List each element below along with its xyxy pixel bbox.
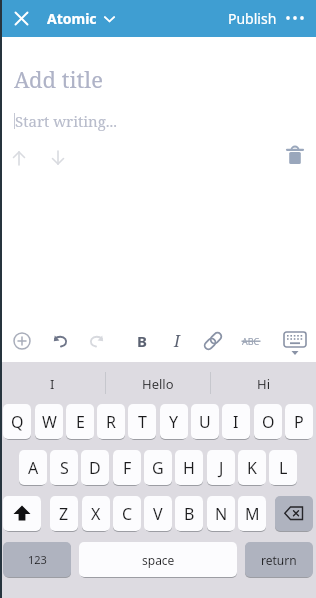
button[interactable]: L bbox=[269, 450, 297, 485]
staticText: I bbox=[174, 330, 180, 352]
button[interactable]: B bbox=[133, 330, 151, 352]
staticText: U bbox=[199, 411, 211, 433]
button[interactable]: G bbox=[144, 450, 172, 485]
button[interactable]: Hello bbox=[105, 365, 211, 403]
button[interactable] bbox=[202, 331, 224, 351]
button[interactable]: A bbox=[19, 450, 47, 485]
button[interactable]: space bbox=[79, 542, 237, 577]
button[interactable]: J bbox=[207, 450, 235, 485]
staticText: J bbox=[219, 457, 224, 479]
staticText: Z bbox=[59, 503, 69, 525]
staticText: C bbox=[122, 503, 133, 525]
button[interactable]: Q bbox=[3, 404, 31, 439]
staticText: Publish bbox=[228, 9, 277, 28]
staticText: Add title bbox=[14, 64, 103, 94]
staticText: 123 bbox=[28, 552, 47, 567]
button[interactable]: O bbox=[254, 404, 282, 439]
button[interactable]: W bbox=[35, 404, 63, 439]
button[interactable]: H bbox=[175, 450, 203, 485]
button[interactable]: Atomic bbox=[47, 0, 115, 37]
staticText: X bbox=[91, 503, 101, 525]
staticText: V bbox=[153, 503, 163, 525]
button[interactable]: ABC bbox=[240, 332, 262, 350]
button[interactable]: C bbox=[113, 496, 141, 531]
button[interactable]: Y bbox=[160, 404, 188, 439]
staticText: A bbox=[28, 457, 39, 479]
button[interactable] bbox=[10, 148, 70, 168]
staticText: S bbox=[60, 457, 69, 479]
button[interactable]: R bbox=[97, 404, 125, 439]
staticText: Hi bbox=[257, 375, 270, 393]
staticText: Hello bbox=[142, 375, 174, 393]
staticText: Q bbox=[11, 411, 24, 433]
button[interactable]: I bbox=[168, 330, 186, 352]
button[interactable]: V bbox=[144, 496, 172, 531]
button[interactable]: Publish bbox=[228, 0, 277, 37]
staticText: E bbox=[76, 411, 85, 433]
button[interactable]: return bbox=[245, 542, 313, 577]
button[interactable]: I bbox=[0, 365, 105, 403]
button[interactable] bbox=[286, 145, 304, 165]
button[interactable]: F bbox=[113, 450, 141, 485]
button[interactable] bbox=[275, 496, 313, 531]
staticText: P bbox=[294, 411, 304, 433]
staticText: M bbox=[245, 503, 260, 525]
staticText: R bbox=[106, 411, 116, 433]
button[interactable]: Hi bbox=[211, 365, 316, 403]
staticText: Y bbox=[169, 411, 179, 433]
staticText: L bbox=[279, 457, 288, 479]
button[interactable]: 123 bbox=[3, 542, 71, 577]
button[interactable]: I bbox=[222, 404, 250, 439]
button[interactable] bbox=[88, 333, 105, 349]
staticText: Atomic bbox=[47, 9, 97, 28]
staticText: W bbox=[42, 411, 57, 433]
staticText: O bbox=[262, 411, 275, 433]
staticText: T bbox=[138, 411, 147, 433]
button[interactable] bbox=[52, 333, 69, 349]
staticText: F bbox=[123, 457, 132, 479]
button[interactable] bbox=[285, 14, 305, 22]
staticText: H bbox=[183, 457, 195, 479]
staticText: ABC bbox=[242, 335, 260, 347]
staticText: D bbox=[89, 457, 101, 479]
button[interactable]: E bbox=[66, 404, 94, 439]
staticText: G bbox=[152, 457, 164, 479]
button[interactable] bbox=[14, 11, 29, 26]
button[interactable]: X bbox=[82, 496, 110, 531]
button[interactable]: S bbox=[50, 450, 78, 485]
staticText: B bbox=[137, 331, 147, 351]
button[interactable]: U bbox=[191, 404, 219, 439]
button[interactable]: K bbox=[238, 450, 266, 485]
staticText: return bbox=[261, 552, 297, 568]
button[interactable]: M bbox=[238, 496, 266, 531]
staticText: K bbox=[247, 457, 257, 479]
button[interactable]: D bbox=[81, 450, 109, 485]
button[interactable] bbox=[13, 332, 31, 350]
staticText: I bbox=[50, 375, 55, 393]
button[interactable] bbox=[3, 496, 41, 531]
staticText: Start writing... bbox=[15, 111, 118, 131]
button[interactable]: P bbox=[285, 404, 313, 439]
button[interactable]: Z bbox=[50, 496, 78, 531]
button[interactable]: N bbox=[207, 496, 235, 531]
button[interactable]: T bbox=[128, 404, 156, 439]
staticText: N bbox=[215, 503, 228, 525]
button[interactable]: B bbox=[175, 496, 203, 531]
staticText: space bbox=[142, 552, 175, 568]
staticText: B bbox=[184, 503, 195, 525]
button[interactable] bbox=[283, 331, 307, 357]
staticText: I bbox=[233, 411, 239, 433]
